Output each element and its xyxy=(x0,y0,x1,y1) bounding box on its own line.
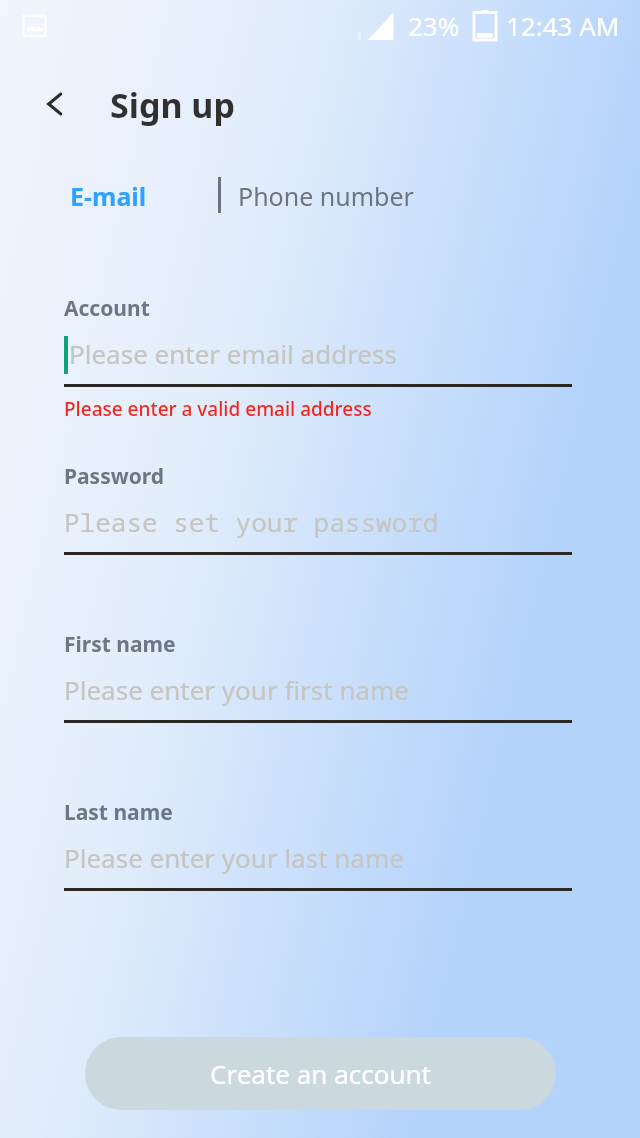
staticText: Please enter a valid email address xyxy=(64,396,372,422)
staticText: 23% xyxy=(408,8,460,43)
button[interactable]: Please enter email address xyxy=(64,332,572,390)
button[interactable]: Back xyxy=(30,78,82,130)
staticText: E-mail xyxy=(70,179,147,213)
button[interactable]: Please enter your last name xyxy=(64,836,572,894)
button[interactable]: Please enter your first name xyxy=(64,668,572,726)
staticText: Please enter your first name xyxy=(64,672,410,707)
button[interactable]: E-mail xyxy=(48,168,196,224)
staticText: Last name xyxy=(64,798,173,827)
staticText: Please enter your last name xyxy=(64,840,404,875)
staticText: Sign up xyxy=(110,82,235,128)
staticText: Account xyxy=(64,294,150,323)
button[interactable]: Please set your password xyxy=(64,500,572,558)
button[interactable]: Create an account xyxy=(85,1037,556,1110)
button[interactable]: Phone number xyxy=(232,168,442,224)
staticText: First name xyxy=(64,630,176,659)
staticText: Please set your password xyxy=(64,504,439,539)
staticText: Phone number xyxy=(238,179,414,213)
staticText: Please enter email address xyxy=(69,336,397,371)
staticText: Create an account xyxy=(210,1056,431,1091)
staticText: 12:43 AM xyxy=(506,8,620,43)
staticText: Password xyxy=(64,462,165,491)
